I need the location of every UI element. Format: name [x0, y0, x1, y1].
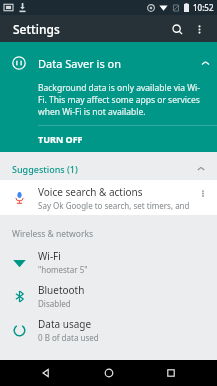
button[interactable]: Data Saver is on — [0, 42, 217, 152]
staticText: Settings — [13, 21, 60, 37]
button[interactable]: Wi-Fi — [0, 245, 217, 279]
staticText: Suggestions (1) — [12, 163, 78, 175]
button[interactable]: More options — [188, 18, 210, 40]
staticText: Data usage — [38, 317, 92, 331]
button[interactable]: Suggestions (1) — [0, 158, 217, 180]
button[interactable]: Back — [29, 360, 63, 386]
button[interactable]: Collapse — [193, 51, 217, 75]
staticText: Wi-Fi — [38, 249, 61, 263]
button[interactable]: Recent apps — [154, 360, 188, 386]
staticText: Background data is only available via Wi… — [38, 82, 205, 118]
button[interactable]: Bluetooth — [0, 279, 217, 313]
staticText: TURN OFF — [38, 133, 83, 145]
staticText: "homestar 5" — [38, 264, 88, 275]
staticText: Bluetooth — [38, 283, 85, 297]
button[interactable]: Home — [92, 360, 126, 386]
staticText: Data Saver is on — [38, 56, 193, 71]
button[interactable]: Suggestion options — [193, 188, 213, 208]
other: Collapse suggestions — [191, 159, 211, 179]
button[interactable]: Data usage — [0, 313, 217, 347]
staticText: 10:52 — [193, 2, 214, 13]
button[interactable]: Search — [166, 18, 188, 40]
staticText: Wireless & networks — [12, 228, 94, 240]
staticText: Voice search & actions — [38, 185, 143, 199]
staticText: Say Ok Google to search, set timers, and… — [38, 200, 193, 211]
staticText: Disabled — [38, 298, 71, 309]
button[interactable]: Voice search & actions — [0, 180, 217, 215]
button[interactable]: TURN OFF — [0, 126, 217, 152]
staticText: 0 B of data used — [38, 332, 99, 343]
